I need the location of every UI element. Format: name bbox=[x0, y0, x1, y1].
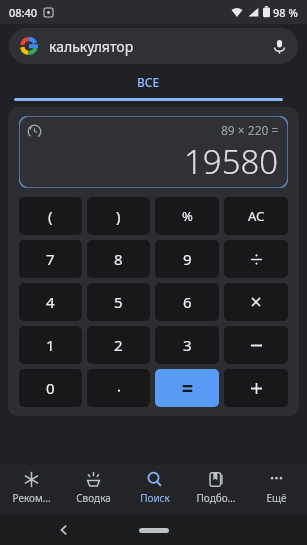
button[interactable]: Ещё bbox=[246, 471, 307, 515]
button[interactable]: Реком… bbox=[0, 471, 62, 515]
staticText: Подбо… bbox=[196, 491, 236, 505]
other: Equals bbox=[180, 381, 195, 396]
button[interactable]: 3 bbox=[155, 326, 219, 364]
button[interactable]: Decimal point bbox=[87, 369, 150, 407]
staticText: AC bbox=[248, 207, 265, 225]
other: Voice search bbox=[272, 39, 287, 54]
button[interactable]: % bbox=[155, 197, 219, 235]
staticText: 5 bbox=[114, 292, 123, 312]
button[interactable]: 1 bbox=[19, 326, 82, 364]
button[interactable]: Plus bbox=[224, 369, 288, 407]
other: Minus bbox=[249, 338, 264, 353]
button[interactable]: Home bbox=[139, 528, 169, 533]
staticText: ) bbox=[116, 206, 121, 226]
button[interactable]: Multiply bbox=[224, 283, 288, 321]
staticText: 2 bbox=[114, 335, 123, 355]
staticText: Поиск bbox=[140, 491, 170, 505]
staticText: 4 bbox=[46, 292, 55, 312]
button[interactable]: Equals bbox=[155, 369, 219, 407]
button[interactable]: Подбо… bbox=[185, 471, 246, 515]
button[interactable]: Divide bbox=[224, 240, 288, 278]
staticText: Ещё bbox=[266, 491, 287, 505]
staticText: 08:40 bbox=[9, 5, 38, 20]
button[interactable]: Поиск bbox=[124, 471, 185, 515]
button[interactable]: ) bbox=[87, 197, 150, 235]
button[interactable]: Minus bbox=[224, 326, 288, 364]
staticText: 3 bbox=[183, 335, 192, 355]
staticText: 7 bbox=[46, 249, 55, 269]
button[interactable]: 5 bbox=[87, 283, 150, 321]
staticText: 6 bbox=[183, 292, 192, 312]
button[interactable]: AC bbox=[224, 197, 288, 235]
button[interactable]: 0 bbox=[19, 369, 82, 407]
staticText: калькулятор bbox=[49, 37, 134, 56]
staticText: 19580 bbox=[184, 139, 279, 184]
other: Plus bbox=[249, 381, 264, 396]
staticText: 89 × 220 = bbox=[221, 122, 279, 138]
other: Divide bbox=[249, 252, 264, 267]
button[interactable]: 8 bbox=[87, 240, 150, 278]
staticText: % bbox=[182, 207, 193, 225]
staticText: ( bbox=[48, 206, 53, 226]
other: Multiply bbox=[250, 296, 262, 308]
staticText: 8 bbox=[114, 249, 123, 269]
staticText: ВСЕ bbox=[137, 74, 160, 90]
staticText: Сводка bbox=[76, 491, 111, 505]
other: Decimal point bbox=[113, 382, 125, 394]
button[interactable]: ВСЕ bbox=[14, 68, 307, 102]
button[interactable]: 9 bbox=[155, 240, 219, 278]
staticText: 1 bbox=[46, 335, 55, 355]
button[interactable]: 4 bbox=[19, 283, 82, 321]
button[interactable]: калькулятор bbox=[9, 28, 298, 64]
staticText: 0 bbox=[46, 378, 55, 398]
button[interactable]: 2 bbox=[87, 326, 150, 364]
button[interactable]: Сводка bbox=[62, 471, 124, 515]
button[interactable]: History bbox=[27, 124, 42, 139]
button[interactable]: 7 bbox=[19, 240, 82, 278]
button[interactable]: 6 bbox=[155, 283, 219, 321]
staticText: 9 bbox=[183, 249, 192, 269]
button[interactable]: ( bbox=[19, 197, 82, 235]
button[interactable]: History bbox=[19, 116, 288, 188]
button[interactable]: Back bbox=[55, 521, 73, 539]
staticText: Реком… bbox=[12, 491, 51, 505]
staticText: 98 % bbox=[273, 5, 298, 20]
